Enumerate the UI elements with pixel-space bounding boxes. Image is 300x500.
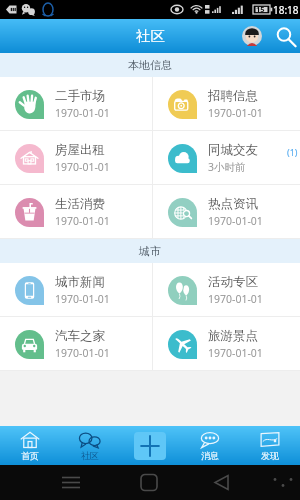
- staticText: 3小时前: [208, 160, 246, 174]
- button[interactable]: 同城交友: [153, 131, 300, 185]
- button[interactable]: 城市新闻: [0, 263, 152, 317]
- button[interactable]: 招聘信息: [153, 77, 300, 131]
- button[interactable]: 首页: [0, 426, 60, 465]
- button[interactable]: Profile: [234, 19, 270, 53]
- staticText: 社区: [81, 450, 99, 461]
- staticText: 1970-01-01: [55, 346, 110, 360]
- staticText: 活动专区: [208, 274, 258, 290]
- staticText: (1): [287, 146, 298, 158]
- staticText: 1970-01-01: [55, 160, 110, 174]
- staticText: 社区: [136, 27, 165, 45]
- staticText: 城市新闻: [55, 274, 105, 290]
- button[interactable]: Add post: [120, 426, 180, 465]
- staticText: 18:18: [273, 3, 299, 17]
- button[interactable]: 消息: [180, 426, 240, 465]
- staticText: 旅游景点: [208, 328, 258, 344]
- staticText: 同城交友: [208, 142, 258, 158]
- staticText: 消息: [201, 450, 219, 461]
- staticText: 15: [256, 4, 265, 14]
- staticText: 二手市场: [55, 88, 105, 104]
- staticText: 1970-01-01: [208, 346, 263, 360]
- button[interactable]: 二手市场: [0, 77, 152, 131]
- staticText: 1970-01-01: [55, 292, 110, 306]
- button[interactable]: 房屋出租: [0, 131, 152, 185]
- button[interactable]: Search: [270, 19, 300, 53]
- button[interactable]: 热点资讯: [153, 185, 300, 239]
- staticText: 房屋出租: [55, 142, 105, 158]
- staticText: 城市: [139, 244, 161, 258]
- staticText: 首页: [21, 450, 39, 461]
- button[interactable]: 活动专区: [153, 263, 300, 317]
- button[interactable]: 旅游景点: [153, 317, 300, 371]
- button[interactable]: 生活消费: [0, 185, 152, 239]
- staticText: 招聘信息: [208, 88, 258, 104]
- button[interactable]: 汽车之家: [0, 317, 152, 371]
- staticText: 热点资讯: [208, 196, 258, 212]
- staticText: 生活消费: [55, 196, 105, 212]
- staticText: 1970-01-01: [208, 106, 263, 120]
- staticText: 汽车之家: [55, 328, 105, 344]
- button[interactable]: 发现: [240, 426, 300, 465]
- staticText: 本地信息: [128, 58, 172, 72]
- button[interactable]: 社区: [60, 426, 120, 465]
- staticText: 1970-01-01: [208, 214, 263, 228]
- staticText: 1970-01-01: [55, 214, 110, 228]
- staticText: 发现: [261, 450, 279, 461]
- staticText: 1970-01-01: [208, 292, 263, 306]
- staticText: 1970-01-01: [55, 106, 110, 120]
